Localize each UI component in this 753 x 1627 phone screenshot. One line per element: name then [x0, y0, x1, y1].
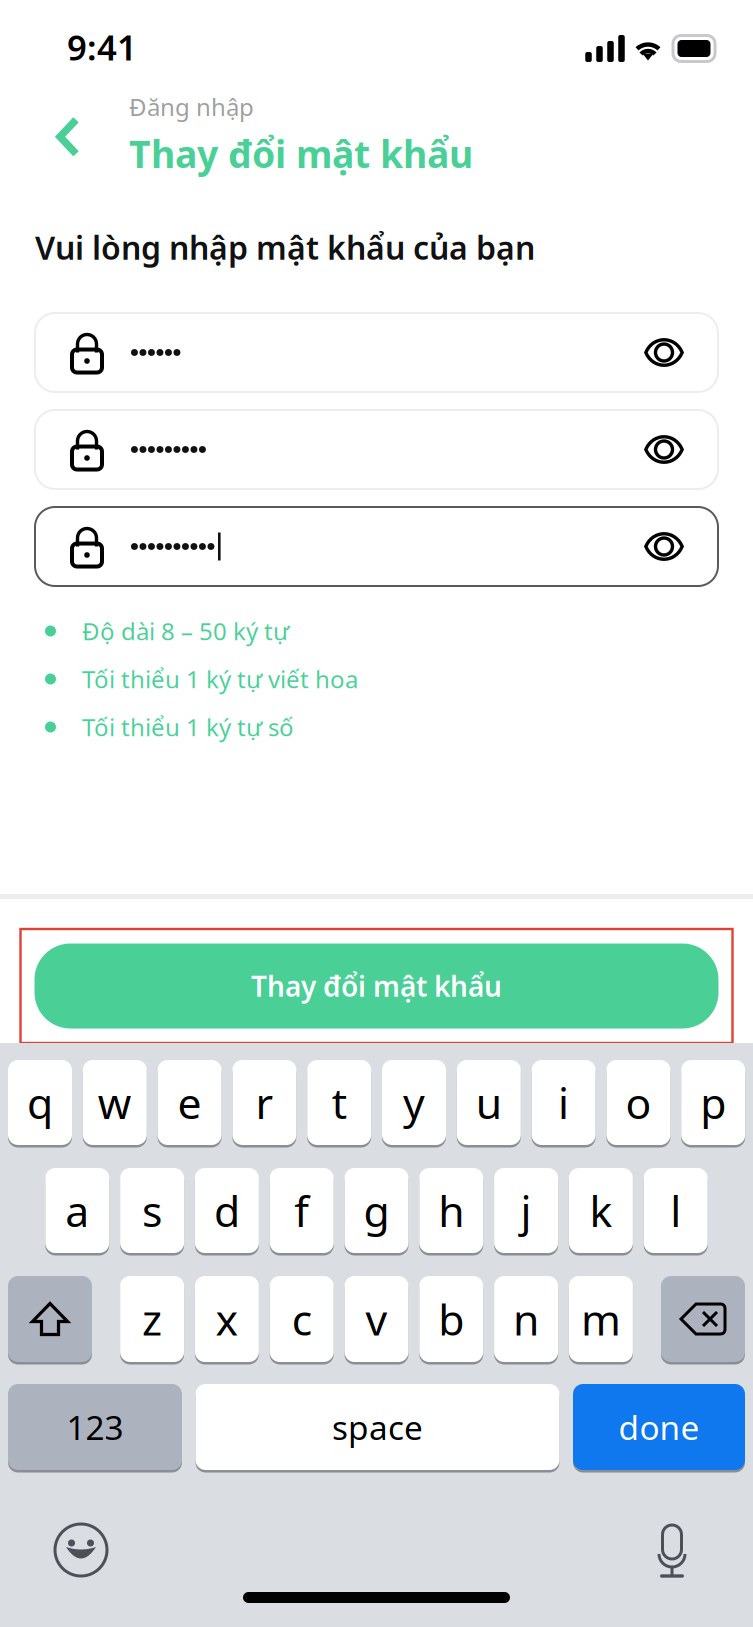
staticText: y	[403, 1074, 425, 1131]
button[interactable]: space	[195, 1384, 559, 1470]
staticText: b	[438, 1291, 464, 1347]
staticText: w	[98, 1074, 132, 1131]
button[interactable]: d	[195, 1168, 259, 1253]
staticText: u	[476, 1074, 502, 1131]
button[interactable]: f	[270, 1168, 334, 1253]
staticText: n	[513, 1291, 539, 1347]
button[interactable]: l	[644, 1168, 708, 1253]
button[interactable]: o	[606, 1060, 670, 1145]
button[interactable]: e	[158, 1060, 222, 1145]
staticText: e	[178, 1074, 202, 1131]
button[interactable]: q	[8, 1060, 72, 1145]
button[interactable]: w	[83, 1060, 147, 1145]
button[interactable]: Shift	[8, 1276, 92, 1362]
button[interactable]: n	[494, 1276, 558, 1362]
staticText: q	[27, 1074, 53, 1131]
button[interactable]: 123	[8, 1384, 182, 1470]
button[interactable]: Emoji keyboard	[53, 1522, 109, 1578]
button[interactable]: Thay đổi mật khẩu	[34, 943, 718, 1028]
staticText: space	[332, 1405, 423, 1449]
button[interactable]: s	[120, 1168, 184, 1253]
button[interactable]: m	[569, 1276, 633, 1362]
staticText: g	[363, 1182, 389, 1239]
button[interactable]	[35, 313, 718, 392]
staticText: 123	[66, 1405, 123, 1449]
button[interactable]: Delete	[661, 1276, 745, 1362]
button[interactable]: i	[532, 1060, 596, 1145]
button[interactable]: b	[419, 1276, 483, 1362]
button[interactable]: k	[569, 1168, 633, 1253]
button[interactable]: v	[344, 1276, 408, 1362]
staticText: t	[332, 1074, 347, 1131]
button[interactable]: z	[120, 1276, 184, 1362]
button[interactable]: x	[195, 1276, 259, 1362]
button[interactable]: t	[307, 1060, 371, 1145]
staticText: i	[558, 1074, 569, 1131]
button[interactable]	[35, 410, 718, 489]
staticText: z	[142, 1291, 162, 1347]
staticText: o	[625, 1074, 651, 1131]
staticText: k	[589, 1182, 612, 1239]
staticText: Vui lòng nhập mật khẩu của bạn	[35, 226, 535, 268]
button[interactable]: p	[681, 1060, 745, 1145]
button[interactable]: done	[573, 1384, 745, 1470]
button[interactable]: j	[494, 1168, 558, 1253]
button[interactable]: c	[270, 1276, 334, 1362]
staticText: 9:41	[67, 24, 137, 70]
staticText: p	[700, 1074, 726, 1131]
button[interactable]: u	[457, 1060, 521, 1145]
staticText: Thay đổi mật khẩu	[129, 129, 473, 178]
button[interactable]: a	[45, 1168, 109, 1253]
staticText: l	[670, 1182, 681, 1239]
button[interactable]	[35, 507, 718, 586]
staticText: done	[618, 1405, 699, 1449]
staticText: Tối thiểu 1 ký tự số	[82, 711, 294, 743]
button[interactable]: r	[232, 1060, 296, 1145]
staticText: f	[294, 1182, 309, 1239]
button[interactable]: h	[419, 1168, 483, 1253]
staticText: Đăng nhập	[129, 91, 254, 123]
staticText: h	[438, 1182, 464, 1239]
staticText: Tối thiểu 1 ký tự viết hoa	[82, 663, 358, 695]
button[interactable]: g	[344, 1168, 408, 1253]
staticText: a	[65, 1182, 89, 1239]
staticText: v	[365, 1291, 387, 1347]
button[interactable]: Back	[55, 116, 81, 158]
button[interactable]: y	[382, 1060, 446, 1145]
staticText: c	[292, 1291, 312, 1347]
staticText: r	[255, 1074, 273, 1131]
button[interactable]: Dictation	[651, 1522, 693, 1578]
staticText: d	[214, 1182, 240, 1239]
staticText: s	[142, 1182, 162, 1239]
staticText: j	[521, 1182, 532, 1239]
staticText: m	[581, 1291, 621, 1347]
staticText: Độ dài 8 – 50 ký tự	[82, 615, 289, 647]
staticText: x	[215, 1291, 238, 1347]
staticText: Thay đổi mật khẩu	[251, 967, 502, 1005]
